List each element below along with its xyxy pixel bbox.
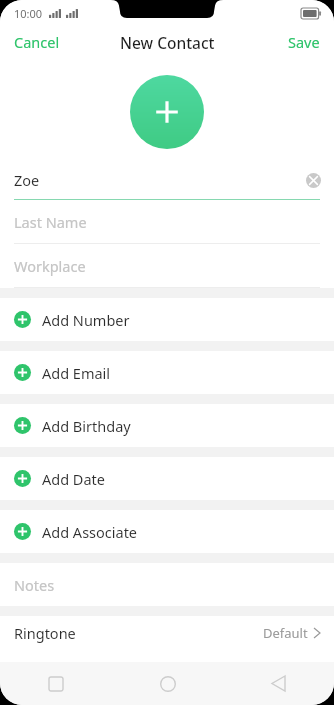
button[interactable]: Add Associate (0, 510, 334, 553)
staticText: Ringtone (14, 623, 76, 643)
staticText: Default (263, 624, 308, 642)
staticText: Add Associate (42, 522, 138, 542)
staticText: Add Birthday (42, 416, 131, 436)
staticText: New Contact (120, 32, 215, 53)
button[interactable]: Ringtone (0, 616, 334, 649)
button[interactable]: Add Birthday (0, 404, 334, 447)
staticText: Last Name (14, 212, 87, 232)
button[interactable]: Notes (0, 563, 334, 606)
staticText: Add Email (42, 363, 111, 383)
button[interactable]: Add Date (0, 457, 334, 500)
button[interactable]: Add Number (0, 298, 334, 341)
staticText: Save (288, 32, 320, 52)
staticText: Workplace (14, 256, 86, 276)
button[interactable]: Back (223, 662, 334, 705)
button[interactable]: Recent apps (0, 662, 112, 705)
button[interactable]: Save (274, 27, 334, 57)
staticText: Add Date (42, 469, 106, 489)
button[interactable]: Clear text (306, 173, 321, 188)
button[interactable]: Last Name (0, 200, 334, 243)
staticText: 10:00 (14, 6, 43, 21)
staticText: Notes (14, 575, 55, 595)
button[interactable]: Add Email (0, 351, 334, 394)
button[interactable]: Home (112, 662, 223, 705)
staticText: Zoe (14, 170, 40, 190)
staticText: Add Number (42, 310, 130, 330)
button[interactable]: Workplace (0, 244, 334, 287)
button[interactable]: Zoe (0, 161, 334, 199)
button[interactable]: Add photo (130, 75, 204, 149)
staticText: Cancel (14, 32, 60, 52)
button[interactable]: Cancel (0, 27, 74, 57)
